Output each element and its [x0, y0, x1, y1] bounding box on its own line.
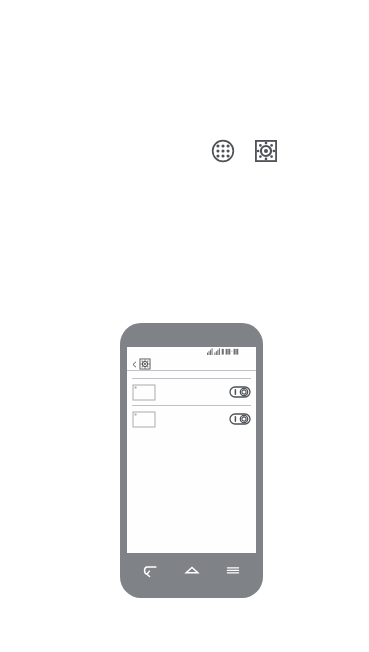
button[interactable]: Settings — [254, 139, 278, 163]
button[interactable] — [127, 379, 256, 405]
button[interactable]: Menu — [221, 558, 245, 582]
button[interactable] — [127, 406, 256, 432]
button[interactable]: Back — [130, 360, 138, 368]
button[interactable]: Home — [180, 558, 204, 582]
button[interactable]: Back — [138, 558, 162, 582]
button[interactable]: All apps — [211, 139, 235, 163]
button[interactable]: App settings — [139, 358, 151, 370]
